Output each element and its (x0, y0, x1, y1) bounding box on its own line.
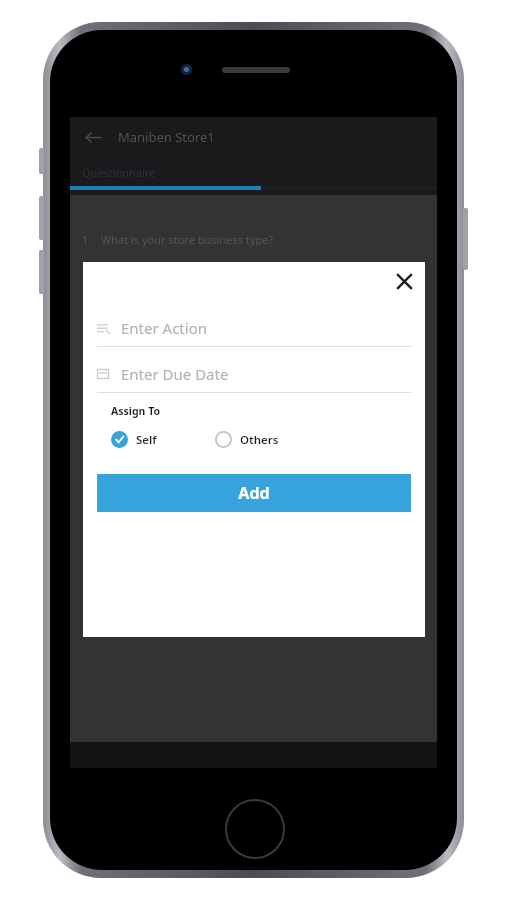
staticText: Self (136, 432, 157, 448)
staticText: Assign To (111, 404, 161, 418)
staticText: Others (240, 432, 279, 448)
staticText: Questionnaire (82, 165, 156, 180)
button[interactable]: Self (111, 431, 157, 448)
staticText: Enter Action (121, 318, 207, 338)
staticText: Enter Due Date (121, 364, 229, 384)
button[interactable]: Enter Due Date (97, 356, 411, 392)
button[interactable]: Others (215, 431, 279, 448)
button[interactable]: Enter Action (97, 310, 411, 346)
button[interactable]: Close (387, 264, 421, 298)
staticText: Maniben Store1 (118, 128, 215, 146)
button[interactable]: Back (78, 122, 108, 152)
staticText: 1 (82, 232, 89, 247)
staticText: What is your store business type? (101, 232, 274, 247)
staticText: Add (238, 482, 270, 504)
button[interactable]: Add (97, 474, 411, 512)
